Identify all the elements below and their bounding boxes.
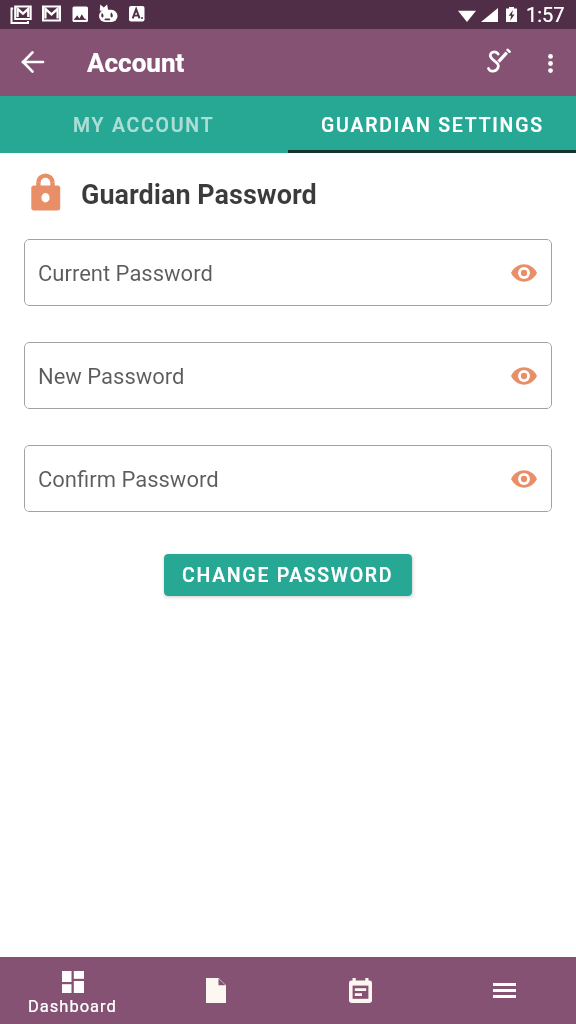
button[interactable]: MY ACCOUNT xyxy=(0,96,288,153)
staticText: MY ACCOUNT xyxy=(73,114,215,137)
staticText: New Password xyxy=(38,364,185,390)
button[interactable]: Signature xyxy=(475,37,523,85)
other: Show password xyxy=(511,367,537,385)
staticText: CHANGE PASSWORD xyxy=(182,564,394,587)
staticText: Current Password xyxy=(38,261,213,287)
other: Show password xyxy=(511,264,537,282)
button[interactable]: Menu xyxy=(432,957,576,1024)
staticText: Dashboard xyxy=(28,997,117,1016)
staticText: Account xyxy=(87,48,185,78)
button[interactable]: Dashboard xyxy=(0,957,144,1024)
button[interactable]: GUARDIAN SETTINGS xyxy=(288,96,576,153)
button[interactable]: Calendar xyxy=(288,957,432,1024)
button[interactable]: Documents xyxy=(144,957,288,1024)
other: Show password xyxy=(511,470,537,488)
button[interactable]: Confirm Password xyxy=(24,445,552,512)
button[interactable]: New Password xyxy=(24,342,552,409)
staticText: GUARDIAN SETTINGS xyxy=(321,114,544,137)
staticText: 1:57 xyxy=(526,3,565,26)
button[interactable]: CHANGE PASSWORD xyxy=(164,554,412,596)
button[interactable]: Current Password xyxy=(24,239,552,306)
staticText: Confirm Password xyxy=(38,467,219,493)
button[interactable]: More options xyxy=(526,39,574,87)
button[interactable]: Back xyxy=(12,41,53,82)
staticText: Guardian Password xyxy=(81,179,317,211)
